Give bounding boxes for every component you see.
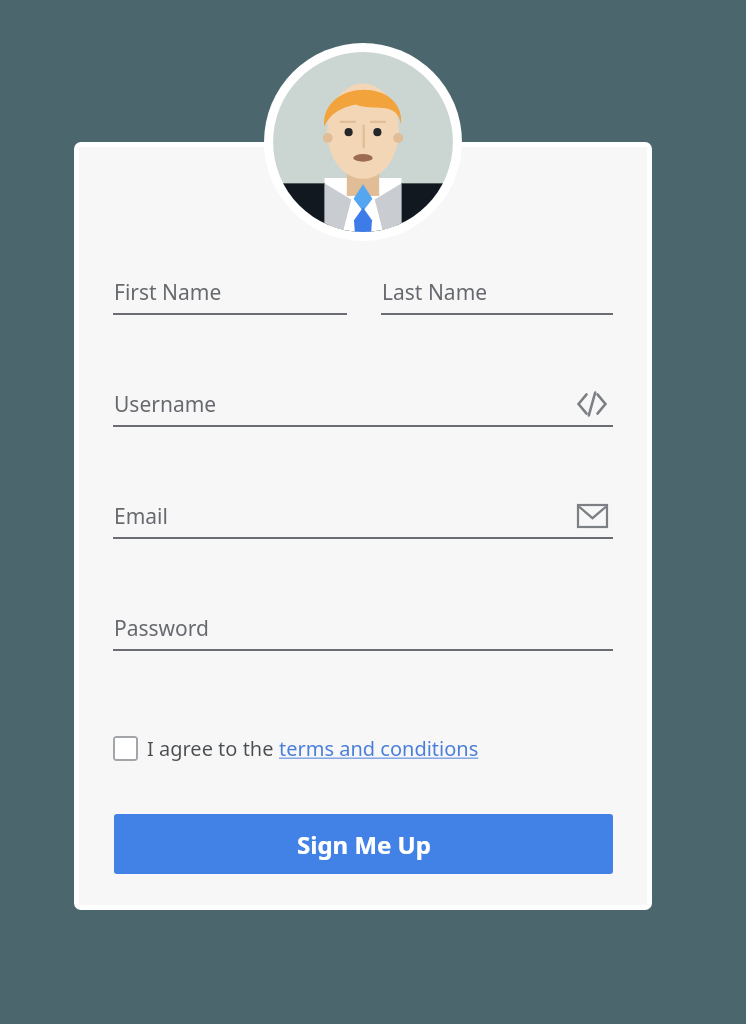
button[interactable]: Email <box>569 493 615 539</box>
staticText: terms and conditions <box>279 735 479 762</box>
staticText: Password <box>114 614 209 643</box>
button[interactable]: Check username availability <box>569 381 615 427</box>
staticText: Last Name <box>382 278 488 307</box>
staticText: Email <box>114 502 168 531</box>
staticText: Sign Me Up <box>297 828 431 861</box>
staticText: I agree to the <box>147 735 279 762</box>
button[interactable]: I agree to the <box>113 729 479 767</box>
button[interactable]: Sign Me Up <box>114 814 613 874</box>
button[interactable]: Profile photo <box>264 43 462 241</box>
staticText: Username <box>114 390 217 419</box>
staticText: First Name <box>114 278 222 307</box>
